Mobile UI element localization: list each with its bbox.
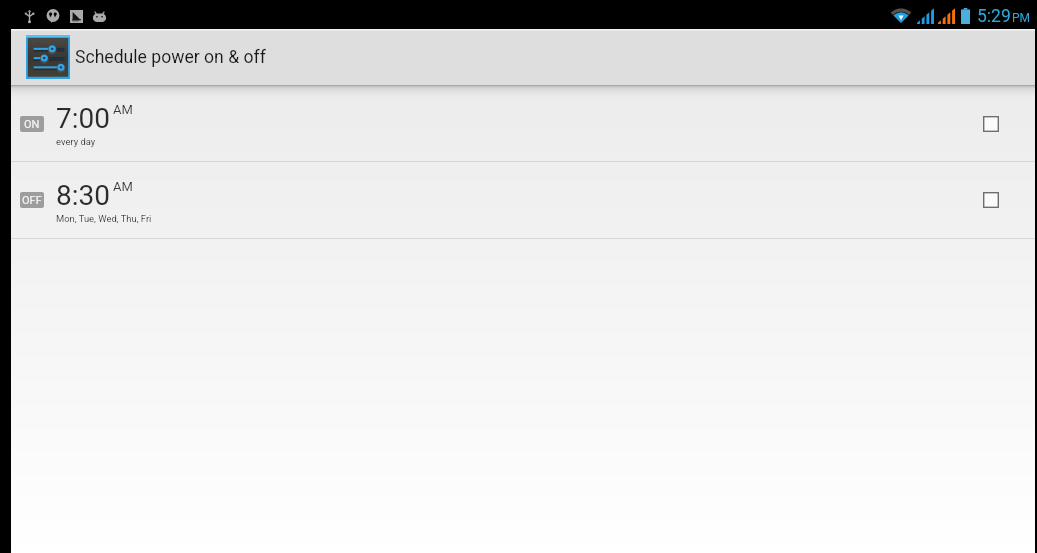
staticText: Mon, Tue, Wed, Thu, Fri <box>56 213 152 224</box>
staticText: Schedule power on & off <box>75 47 266 68</box>
staticText: AM <box>113 179 133 194</box>
staticText: 8:30 <box>56 179 110 212</box>
button[interactable]: ON <box>11 86 1035 161</box>
button[interactable]: Enable schedule <box>971 180 1011 220</box>
staticText: OFF <box>22 194 42 207</box>
button[interactable]: OFF <box>11 162 1035 238</box>
staticText: 7:00 <box>56 102 110 135</box>
staticText: every day <box>56 136 96 147</box>
button[interactable]: Schedule settings <box>26 35 70 79</box>
staticText: PM <box>1012 11 1031 25</box>
staticText: ON <box>24 118 40 131</box>
button[interactable]: Enable schedule <box>971 104 1011 144</box>
staticText: AM <box>113 102 133 117</box>
staticText: 5:29 <box>977 6 1011 27</box>
